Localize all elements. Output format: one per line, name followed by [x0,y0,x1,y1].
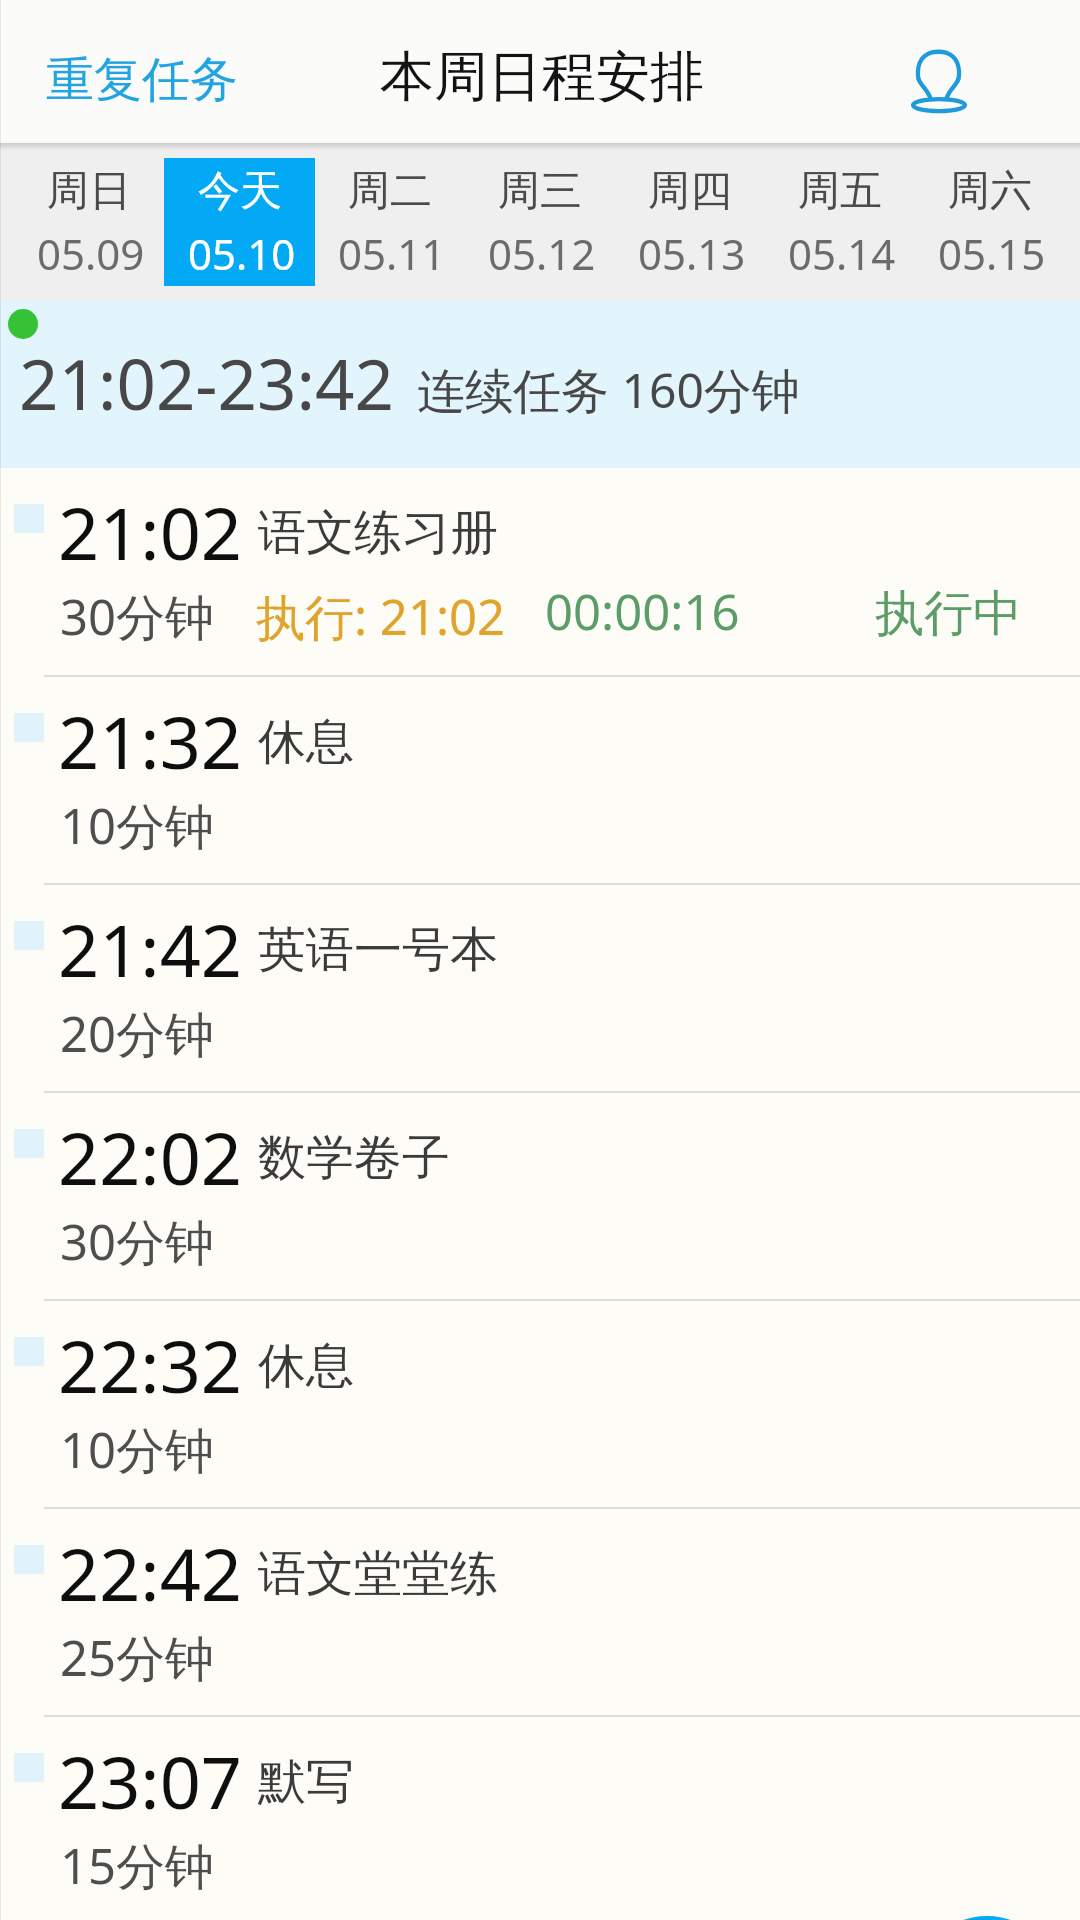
staticText: 执行: 21:02 [256,583,506,650]
staticText: 30分钟 [60,1208,215,1275]
button[interactable]: 周三 [465,158,615,286]
staticText: 20分钟 [60,1000,215,1067]
staticText: 周四 [648,165,732,218]
staticText: 05.14 [788,225,896,282]
button[interactable]: 周二 [315,158,465,286]
staticText: 22:42 [58,1524,243,1622]
staticText: 05.12 [488,225,596,282]
staticText: 语文练习册 [258,503,498,563]
staticText: 语文堂堂练 [258,1544,498,1604]
staticText: 05.10 [188,225,296,282]
button[interactable]: 21:32 [0,677,1080,883]
staticText: 10分钟 [60,792,215,859]
staticText: 周五 [798,165,882,218]
staticText: 默写 [258,1752,354,1812]
staticText: 21:02 [58,483,243,581]
staticText: 休息 [258,712,354,772]
button[interactable]: 周四 [615,158,765,286]
button[interactable]: Add task [913,1916,1061,1920]
staticText: 21:02-23:42 [19,336,394,430]
button[interactable]: 22:42 [0,1509,1080,1715]
staticText: 英语一号本 [258,920,498,980]
button[interactable]: 周日 [13,158,164,286]
staticText: 休息 [258,1336,354,1396]
staticText: 30分钟 [60,583,215,650]
staticText: 05.13 [638,225,746,282]
staticText: 连续任务 160分钟 [417,357,800,423]
staticText: 数学卷子 [258,1128,450,1188]
staticText: 周二 [348,165,432,218]
staticText: 执行中 [875,583,1022,645]
staticText: 周三 [498,165,582,218]
button[interactable]: 周六 [915,158,1065,286]
staticText: 重复任务 [46,50,238,110]
button[interactable]: 22:32 [0,1301,1080,1507]
staticText: 22:32 [58,1316,243,1414]
staticText: 21:32 [58,692,243,790]
staticText: 21:42 [58,900,243,998]
staticText: 05.09 [37,225,145,282]
staticText: 15分钟 [60,1832,215,1899]
staticText: 本周日程安排 [380,43,704,111]
staticText: 05.15 [938,225,1046,282]
button[interactable]: 今天 [164,158,315,286]
staticText: 22:02 [58,1108,243,1206]
button[interactable]: 21:02 [0,468,1080,675]
button[interactable]: 21:42 [0,885,1080,1091]
staticText: 周六 [948,165,1032,218]
button[interactable]: 23:07 [0,1717,1080,1920]
staticText: 05.11 [338,225,446,282]
staticText: 25分钟 [60,1624,215,1691]
button[interactable]: 周五 [765,158,915,286]
staticText: 23:07 [58,1732,243,1830]
button[interactable]: 22:02 [0,1093,1080,1299]
staticText: 周日 [47,165,131,218]
button[interactable]: 重复任务 [20,24,264,136]
staticText: 10分钟 [60,1416,215,1483]
button[interactable]: Account [889,32,989,132]
staticText: 今天 [198,165,282,218]
staticText: 00:00:16 [545,578,740,645]
